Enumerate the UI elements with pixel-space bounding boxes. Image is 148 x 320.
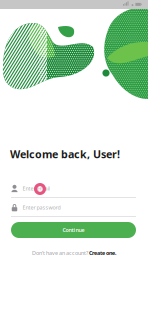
staticText: Welcome back, User! xyxy=(10,147,120,161)
button[interactable]: Don't have an account? xyxy=(0,249,148,257)
staticText: Enter password xyxy=(22,204,60,211)
staticText: Don't have an account? xyxy=(32,249,89,257)
staticText: Create one. xyxy=(89,249,116,257)
button[interactable]: Continue xyxy=(11,222,136,238)
staticText: Continue xyxy=(62,226,84,234)
staticText: Enter email xyxy=(22,185,49,192)
